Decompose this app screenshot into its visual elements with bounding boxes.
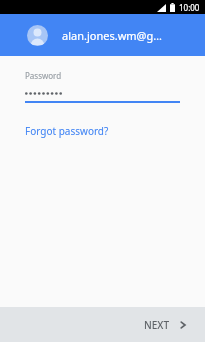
staticText: NEXT	[144, 318, 170, 332]
staticText: alan.jones.wm@g…	[62, 28, 162, 43]
button[interactable]: Account	[0, 14, 205, 56]
button[interactable]: NEXT	[138, 311, 193, 339]
other: Account	[27, 25, 48, 46]
staticText: Password	[25, 70, 62, 81]
button[interactable]: Forgot password?	[25, 124, 109, 138]
staticText: 10:00	[179, 2, 200, 13]
staticText: Forgot password?	[25, 124, 109, 138]
